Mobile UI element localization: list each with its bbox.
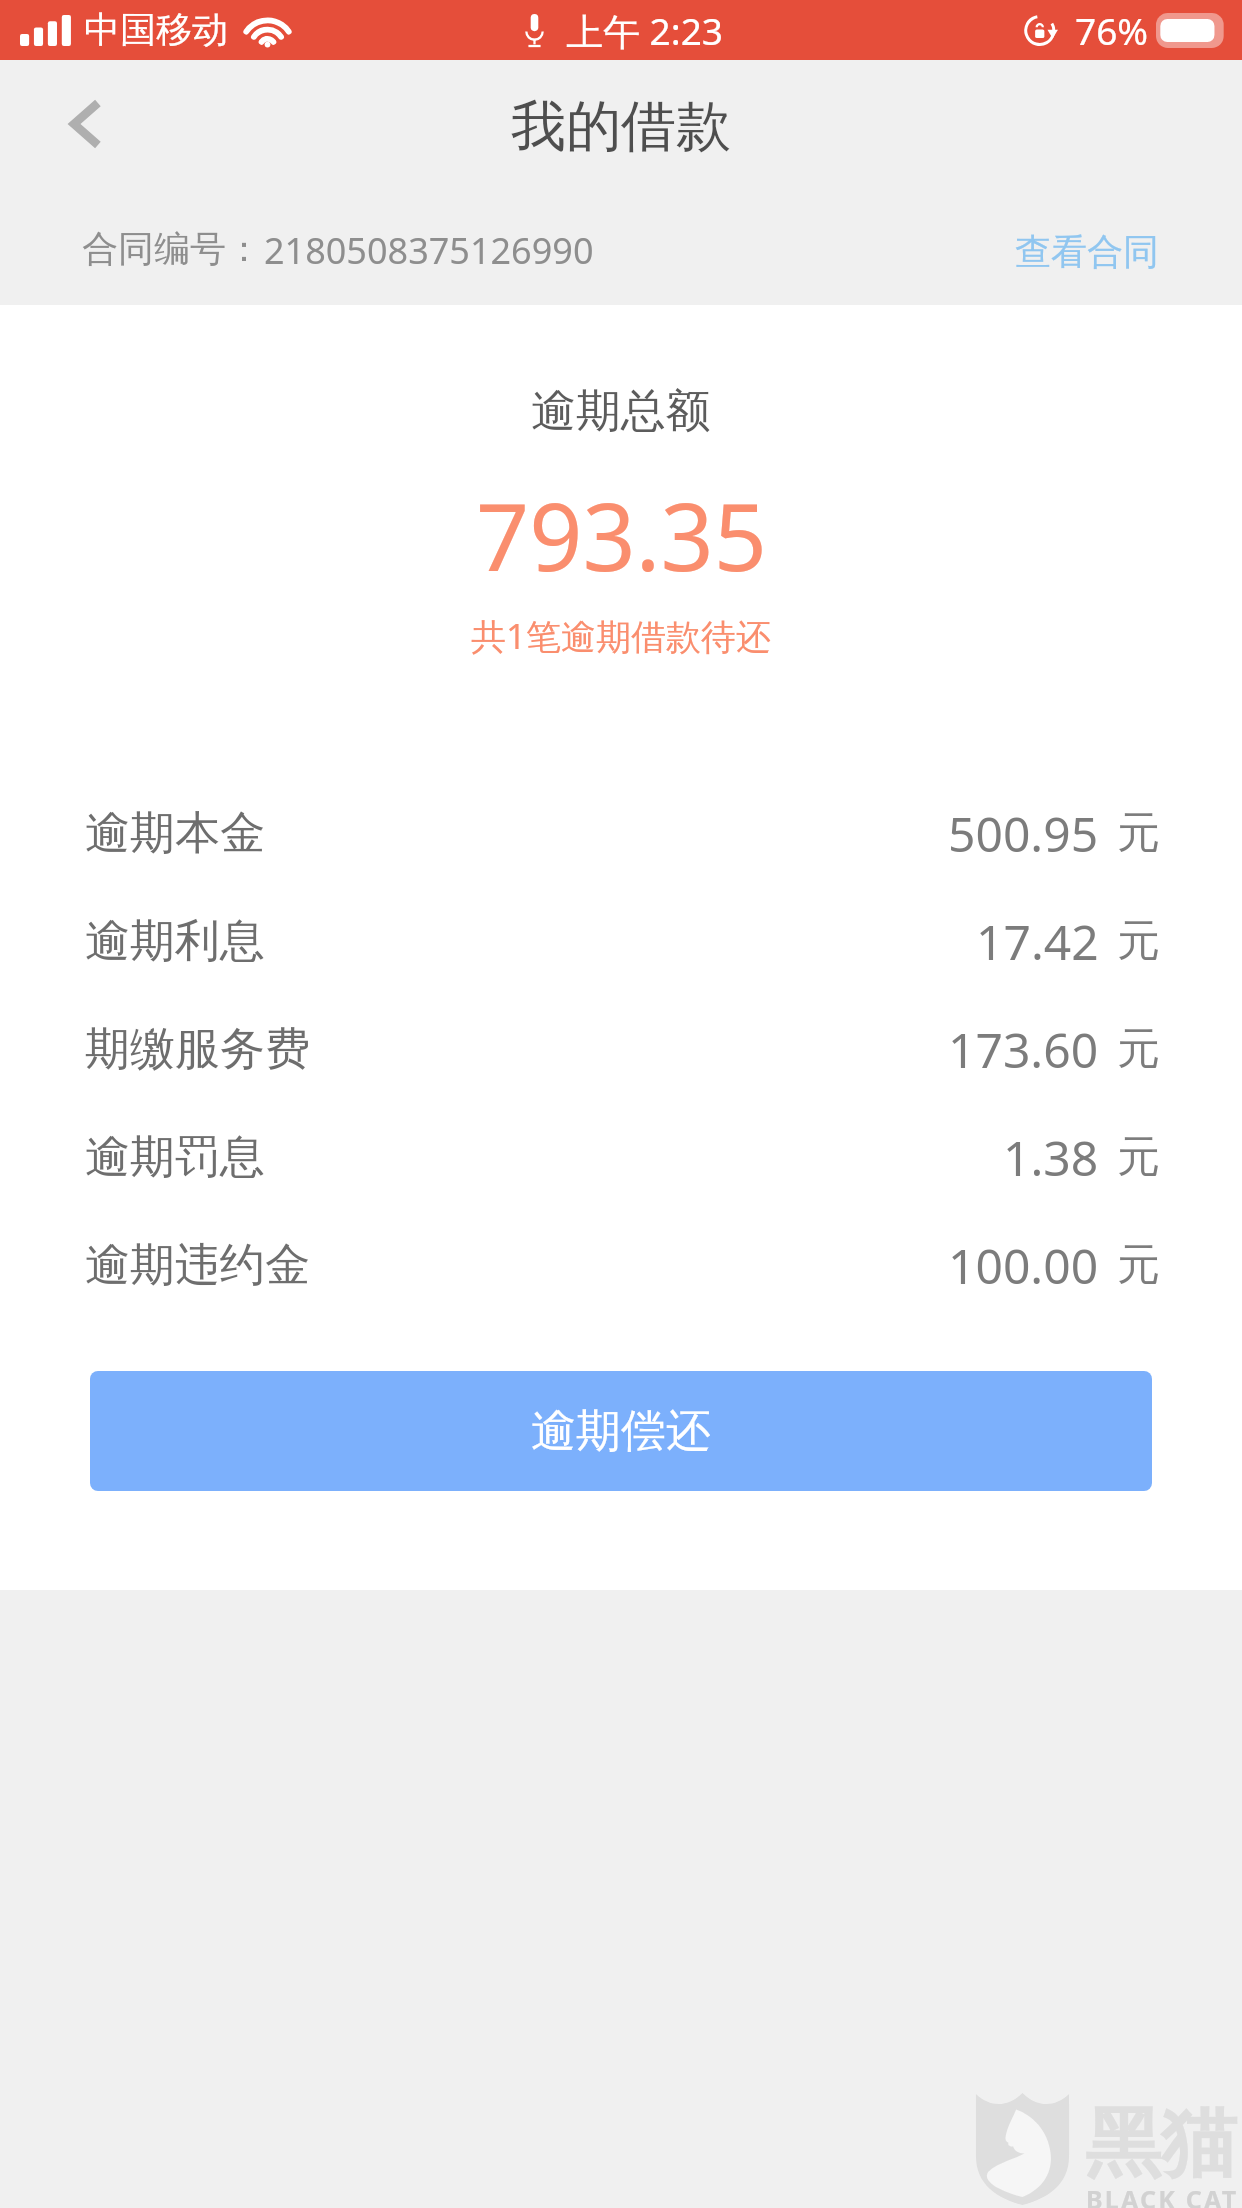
staticText: 我的借款: [511, 92, 731, 161]
staticText: 逾期本金: [85, 805, 265, 862]
staticText: 共1笔逾期借款待还: [471, 612, 772, 660]
staticText: 500.95: [948, 801, 1099, 866]
staticText: 逾期违约金: [85, 1237, 310, 1294]
staticText: 76%: [1075, 5, 1149, 55]
button[interactable]: 逾期偿还: [90, 1371, 1152, 1491]
staticText: 1.38: [1003, 1125, 1099, 1190]
button[interactable]: Back: [20, 60, 145, 176]
staticText: 173.60: [948, 1017, 1099, 1082]
staticText: 17.42: [976, 909, 1099, 974]
staticText: 查看合同: [1015, 229, 1159, 274]
staticText: 逾期总额: [531, 383, 711, 440]
staticText: BLACK CAT: [1086, 2182, 1239, 2208]
staticText: 逾期罚息: [85, 1129, 265, 1186]
staticText: 元: [1117, 806, 1160, 860]
staticText: 合同编号：: [82, 226, 262, 271]
staticText: 2180508375126990: [264, 226, 594, 275]
staticText: 元: [1117, 914, 1160, 968]
staticText: 期缴服务费: [85, 1021, 310, 1078]
button[interactable]: 查看合同: [1011, 221, 1163, 282]
staticText: 黑猫: [1085, 2096, 1237, 2192]
staticText: 逾期偿还: [531, 1403, 711, 1460]
staticText: 元: [1117, 1130, 1160, 1184]
staticText: 元: [1117, 1022, 1160, 1076]
staticText: 上午 2:23: [566, 5, 724, 56]
staticText: 元: [1117, 1238, 1160, 1292]
staticText: 793.35: [476, 472, 767, 599]
staticText: 中国移动: [84, 7, 228, 52]
staticText: 逾期利息: [85, 913, 265, 970]
staticText: 100.00: [948, 1233, 1099, 1298]
